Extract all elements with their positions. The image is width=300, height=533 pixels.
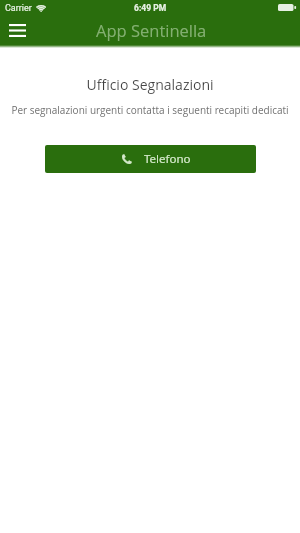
staticText:  [122, 154, 132, 166]
button[interactable]:  [45, 145, 256, 173]
staticText: Per segnalazioni urgenti contatta i segu… [0, 103, 300, 117]
staticText: 6:49 PM [134, 3, 167, 13]
staticText: Ufficio Segnalazioni [0, 75, 300, 94]
staticText: Carrier [5, 3, 32, 14]
staticText: Telefono [144, 151, 191, 167]
button[interactable]: Open navigation menu [2, 16, 32, 44]
staticText:  [36, 4, 47, 13]
staticText: App Sentinella [96, 19, 207, 41]
